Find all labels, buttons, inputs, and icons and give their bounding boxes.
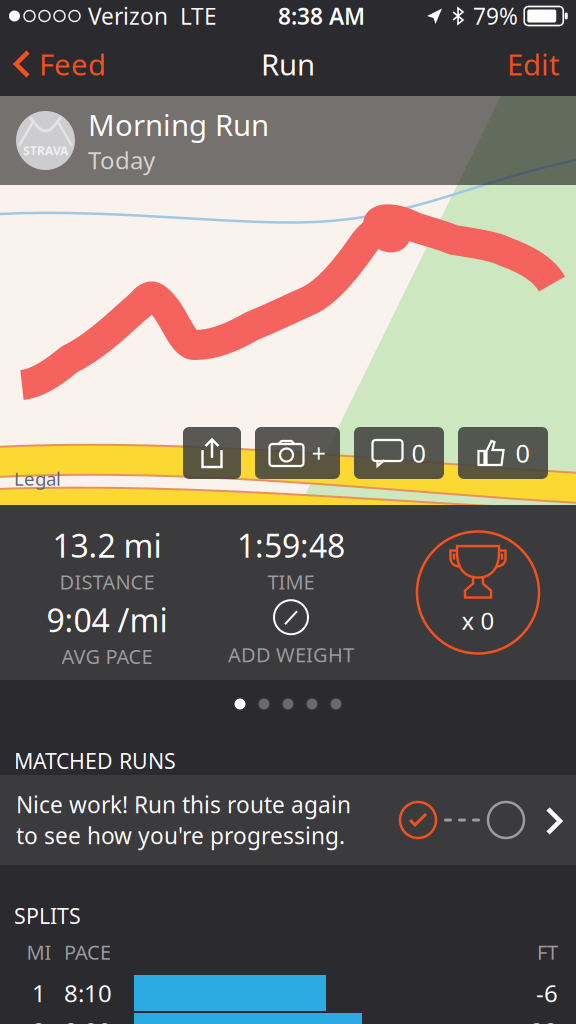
staticText: 8:10 bbox=[64, 977, 112, 1009]
staticText: to see how you're progressing. bbox=[16, 820, 345, 851]
staticText: Verizon bbox=[88, 1, 168, 31]
staticText: 1 bbox=[32, 977, 46, 1009]
staticText: TIME bbox=[267, 568, 314, 595]
button[interactable]: Share bbox=[183, 427, 241, 479]
staticText: Legal bbox=[14, 466, 61, 491]
button[interactable]: Feed bbox=[0, 32, 116, 96]
button[interactable]: Comments bbox=[354, 427, 444, 479]
staticText: Today bbox=[88, 144, 155, 176]
staticText: SPLITS bbox=[14, 902, 81, 930]
staticText: MATCHED RUNS bbox=[14, 747, 176, 775]
staticText: 9:04 /mi bbox=[46, 598, 167, 641]
button[interactable]: Add photo bbox=[255, 427, 340, 479]
staticText: 8:38 AM bbox=[278, 1, 365, 31]
staticText: MI bbox=[26, 939, 51, 965]
staticText: 79% bbox=[473, 1, 518, 31]
staticText: Run bbox=[261, 44, 315, 83]
staticText: 1:59:48 bbox=[237, 524, 345, 566]
button[interactable]: Kudos bbox=[458, 427, 548, 479]
staticText: 13.2 mi bbox=[52, 524, 161, 566]
staticText: Morning Run bbox=[88, 105, 269, 144]
staticText: DISTANCE bbox=[59, 568, 154, 595]
staticText: Nice work! Run this route again bbox=[16, 789, 351, 819]
staticText: -6 bbox=[536, 977, 558, 1009]
button[interactable]: Add weight bbox=[274, 600, 308, 634]
staticText: 8:09 bbox=[64, 1015, 112, 1024]
staticText: Edit bbox=[507, 44, 560, 83]
staticText: 0 bbox=[411, 436, 425, 470]
button[interactable]: Nice work! Run this route again bbox=[0, 775, 576, 865]
staticText: -22 bbox=[522, 1015, 558, 1024]
staticText: PACE bbox=[64, 939, 111, 965]
staticText: STRAVA bbox=[23, 142, 68, 158]
staticText: + bbox=[311, 436, 325, 470]
staticText: 2 bbox=[32, 1015, 46, 1024]
staticText: FT bbox=[537, 939, 558, 965]
button[interactable]: Edit bbox=[491, 32, 576, 96]
staticText: Feed bbox=[39, 44, 106, 83]
staticText: ADD WEIGHT bbox=[228, 641, 354, 668]
staticText: AVG PACE bbox=[61, 643, 152, 670]
staticText: x 0 bbox=[461, 605, 494, 636]
staticText: 0 bbox=[515, 436, 529, 470]
staticText: LTE bbox=[180, 1, 217, 31]
